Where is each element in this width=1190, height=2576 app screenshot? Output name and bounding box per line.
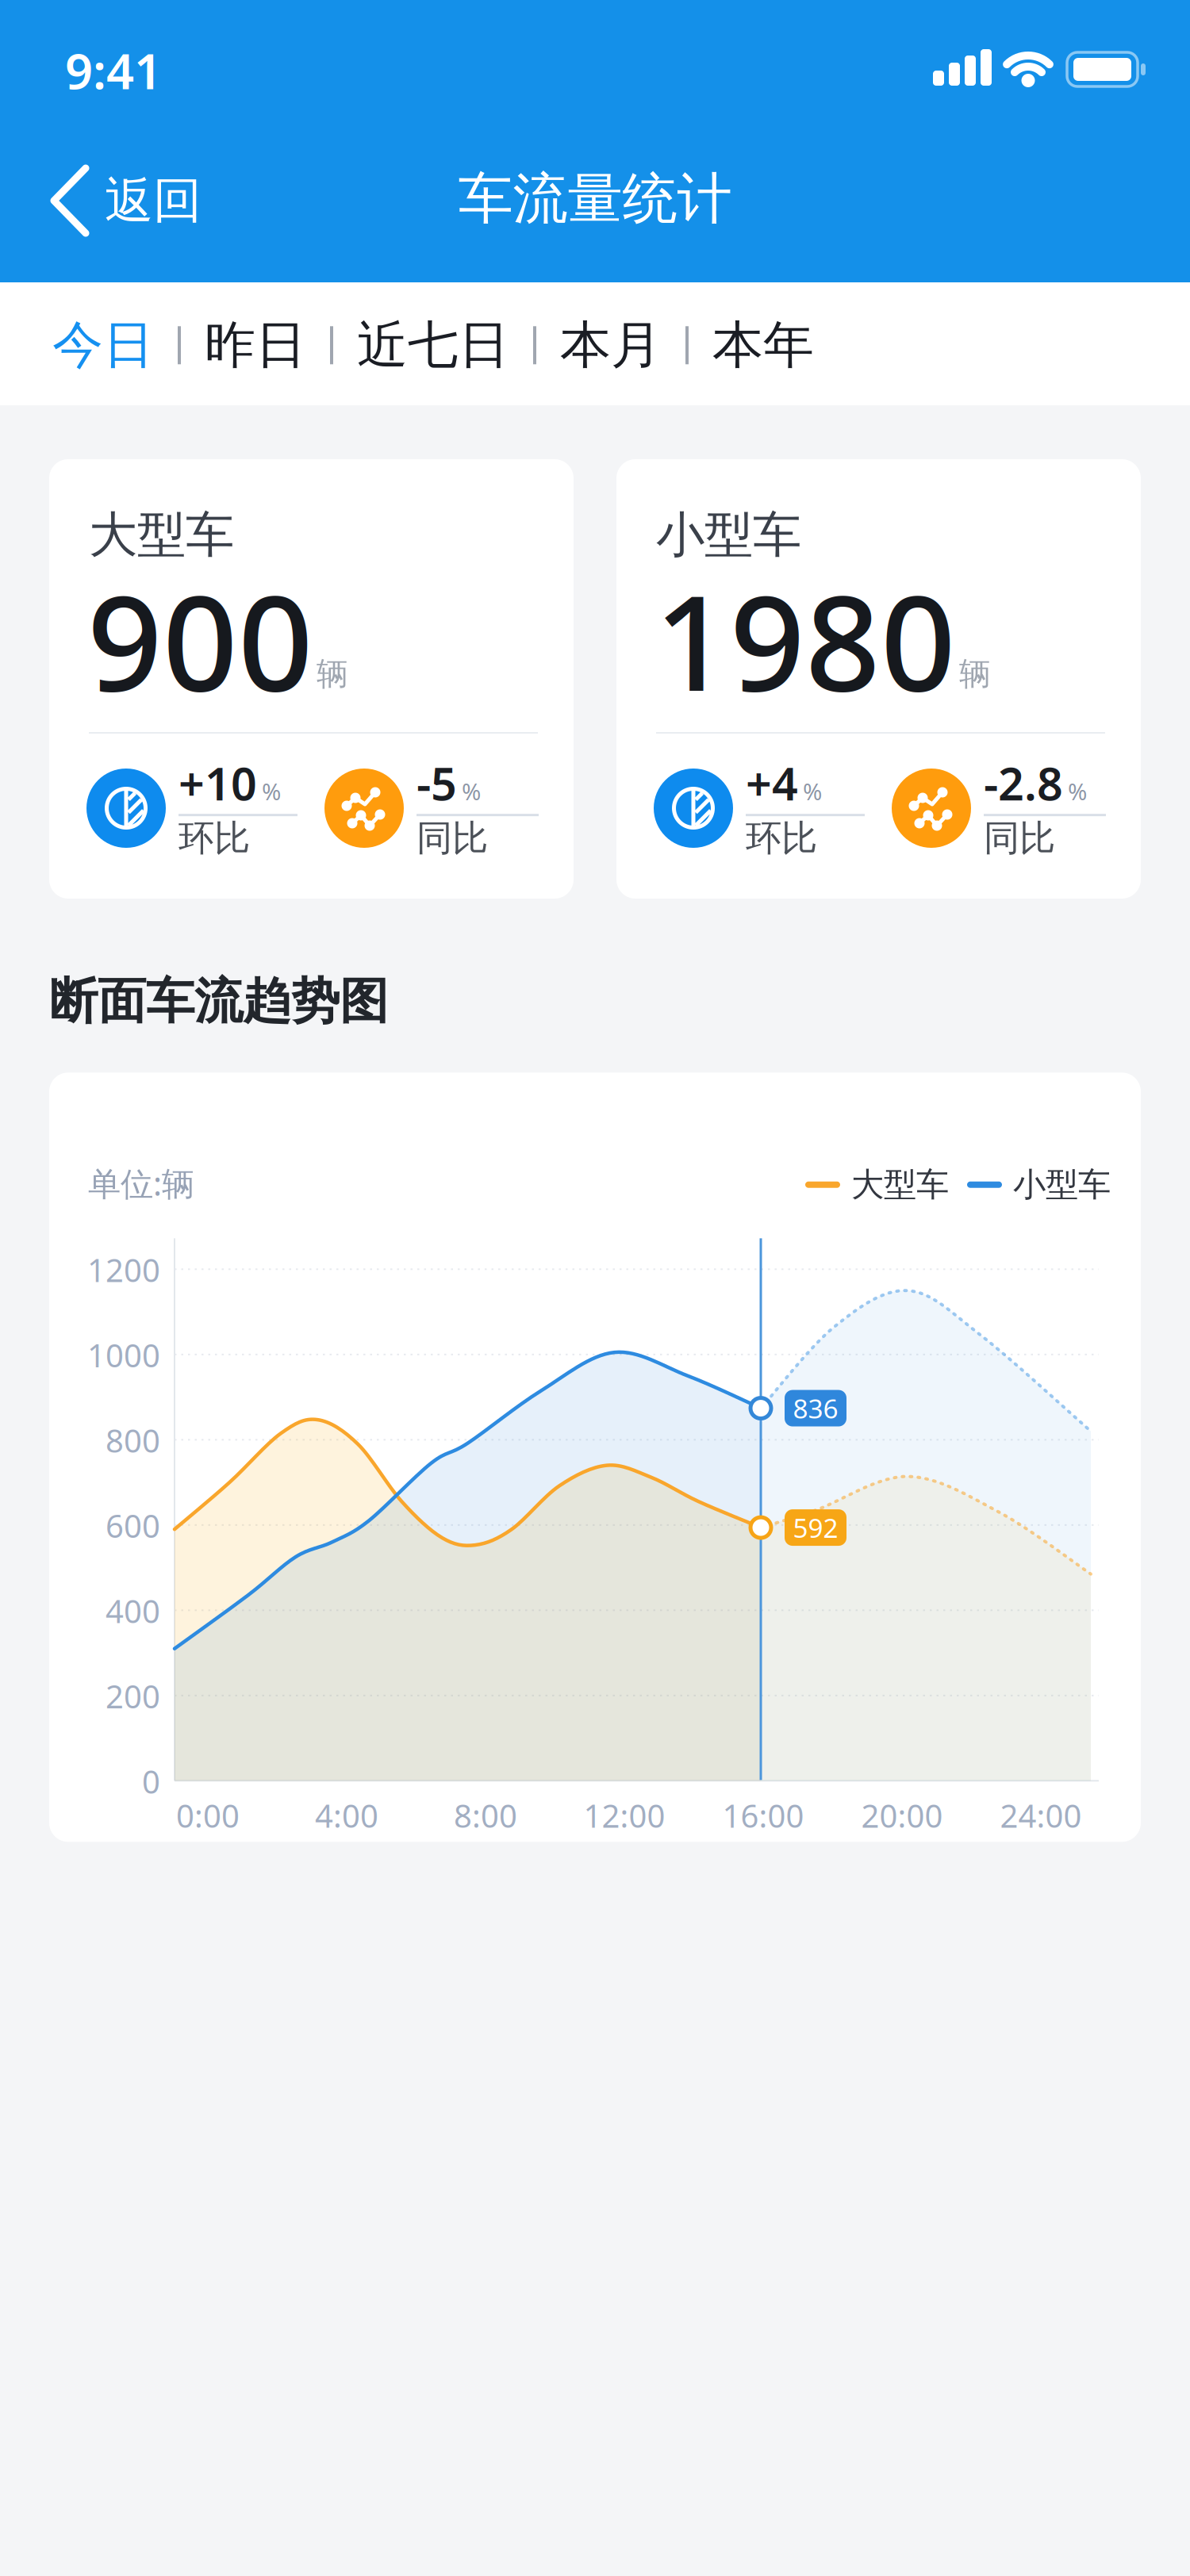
staticText: 9:41 bbox=[65, 38, 162, 103]
button[interactable]: 大型车 bbox=[805, 1165, 949, 1205]
staticText: % bbox=[262, 776, 281, 807]
staticText: 8:00 bbox=[454, 1794, 517, 1836]
staticText: 大型车 bbox=[851, 1165, 949, 1205]
button[interactable]: 本月 bbox=[560, 314, 662, 376]
staticText: 小型车 bbox=[1013, 1165, 1111, 1205]
staticText: 断面车流趋势图 bbox=[49, 972, 388, 1031]
staticText: 800 bbox=[106, 1419, 160, 1461]
staticText: 同比 bbox=[416, 816, 488, 860]
staticText: 1000 bbox=[87, 1334, 160, 1376]
staticText: 24:00 bbox=[1000, 1794, 1082, 1836]
staticText: % bbox=[1068, 776, 1087, 807]
staticText: 辆 bbox=[317, 655, 348, 694]
staticText: 辆 bbox=[959, 655, 991, 694]
button[interactable]: 近七日 bbox=[357, 314, 509, 376]
staticText: 大型车 bbox=[89, 505, 234, 565]
button[interactable]: 返回 bbox=[54, 168, 202, 233]
staticText: +4 bbox=[746, 753, 798, 813]
staticText: 4:00 bbox=[315, 1794, 378, 1836]
staticText: 0 bbox=[142, 1760, 160, 1802]
staticText: -5 bbox=[416, 753, 457, 813]
staticText: -2.8 bbox=[984, 753, 1063, 813]
staticText: 车流量统计 bbox=[458, 165, 732, 233]
staticText: 1980 bbox=[654, 553, 956, 727]
staticText: 小型车 bbox=[656, 505, 801, 565]
staticText: 12:00 bbox=[583, 1794, 665, 1836]
staticText: 本年 bbox=[712, 314, 814, 376]
staticText: 16:00 bbox=[722, 1794, 804, 1836]
staticText: 200 bbox=[106, 1675, 160, 1717]
staticText: 600 bbox=[106, 1504, 160, 1546]
staticText: 单位:辆 bbox=[88, 1161, 194, 1205]
button[interactable]: 小型车 bbox=[967, 1165, 1111, 1205]
staticText: 836 bbox=[793, 1391, 838, 1426]
staticText: 环比 bbox=[178, 816, 250, 860]
staticText: 同比 bbox=[984, 816, 1055, 860]
staticText: 返回 bbox=[105, 171, 202, 230]
staticText: 20:00 bbox=[861, 1794, 943, 1836]
staticText: 0:00 bbox=[176, 1794, 240, 1836]
staticText: 今日 bbox=[52, 314, 154, 376]
button[interactable]: 昨日 bbox=[205, 314, 306, 376]
staticText: 环比 bbox=[746, 816, 817, 860]
staticText: +10 bbox=[178, 753, 257, 813]
staticText: 昨日 bbox=[205, 314, 306, 376]
button[interactable]: 本年 bbox=[712, 314, 814, 376]
button[interactable]: 今日 bbox=[52, 314, 154, 376]
staticText: % bbox=[803, 776, 822, 807]
staticText: 1200 bbox=[87, 1249, 160, 1291]
staticText: % bbox=[462, 776, 481, 807]
staticText: 900 bbox=[87, 553, 313, 727]
staticText: 400 bbox=[106, 1590, 160, 1632]
staticText: 本月 bbox=[560, 314, 662, 376]
staticText: 592 bbox=[793, 1510, 838, 1545]
staticText: 近七日 bbox=[357, 314, 509, 376]
